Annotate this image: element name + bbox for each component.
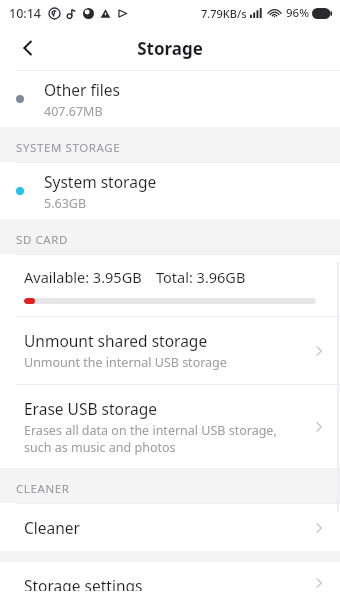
- staticText: Storage: [137, 37, 203, 60]
- staticText: 10:14: [9, 5, 42, 22]
- button[interactable]: Available: 3.95GB: [0, 255, 340, 316]
- staticText: 96%: [286, 5, 309, 21]
- staticText: Erases all data on the internal USB stor…: [24, 422, 282, 455]
- staticText: Other files: [44, 79, 120, 100]
- staticText: Erase USB storage: [24, 398, 158, 419]
- button[interactable]: Back: [8, 28, 48, 68]
- button[interactable]: Erase USB storage: [0, 385, 340, 468]
- staticText: SD CARD: [16, 232, 69, 248]
- button[interactable]: Storage settings: [0, 562, 340, 604]
- staticText: System storage: [44, 171, 157, 192]
- staticText: Unmount shared storage: [24, 330, 208, 351]
- staticText: Storage settings: [24, 575, 143, 591]
- button[interactable]: Unmount shared storage: [0, 317, 340, 384]
- button[interactable]: Other files: [0, 71, 340, 127]
- staticText: Cleaner: [24, 517, 80, 538]
- staticText: 7.79KB/s: [201, 6, 247, 21]
- staticText: Total: 3.96GB: [156, 267, 246, 287]
- staticText: CLEANER: [16, 481, 70, 497]
- staticText: 5.63GB: [44, 195, 87, 212]
- staticText: 407.67MB: [44, 103, 103, 120]
- button[interactable]: System storage: [0, 163, 340, 219]
- staticText: Unmount the internal USB storage: [24, 354, 282, 371]
- staticText: Available: 3.95GB: [24, 267, 142, 287]
- button[interactable]: Cleaner: [0, 504, 340, 551]
- staticText: SYSTEM STORAGE: [16, 140, 121, 156]
